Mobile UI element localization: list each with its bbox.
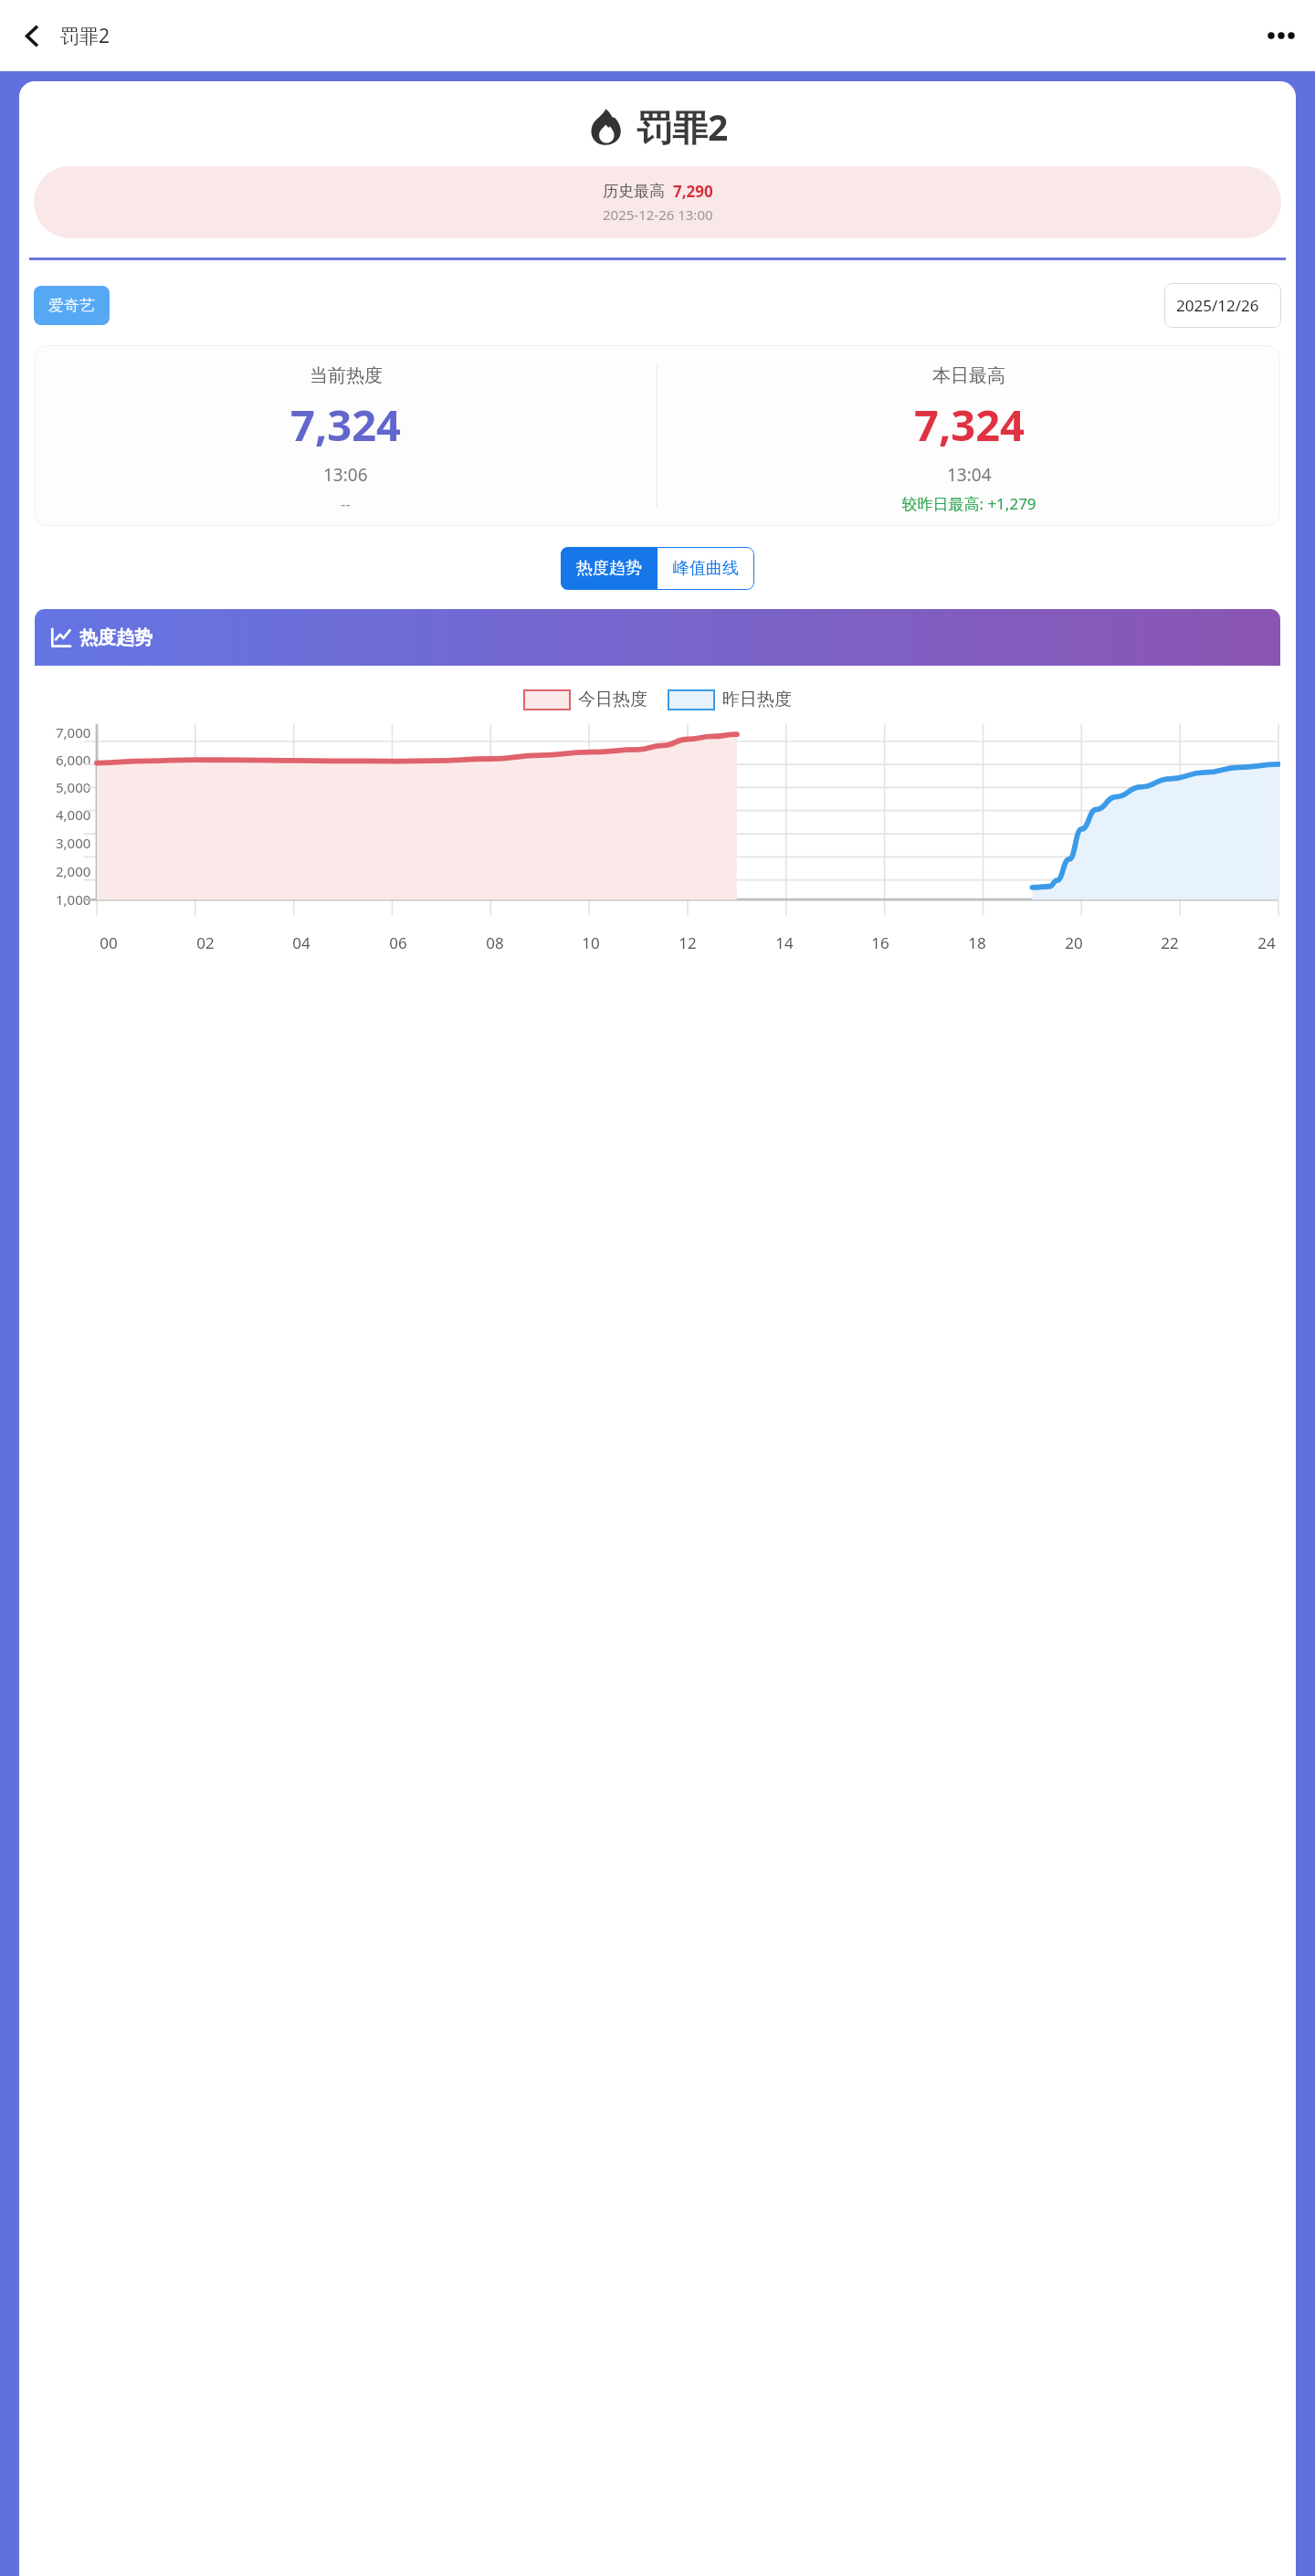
staticText: 罚罪2 (636, 102, 729, 151)
staticText: 10 (582, 932, 600, 953)
staticText: 2025/12/26 (1176, 295, 1259, 316)
staticText: 7,000 (56, 723, 91, 741)
staticText: 24 (1257, 932, 1276, 953)
button[interactable]: 当前热度 (35, 345, 657, 526)
staticText: 峰值曲线 (673, 558, 739, 579)
staticText: -- (341, 493, 351, 514)
staticText: 当前热度 (310, 364, 383, 387)
staticText: 6,000 (56, 751, 91, 769)
staticText: 5,000 (56, 778, 91, 796)
staticText: 20 (1065, 932, 1083, 953)
staticText: 昨日热度 (722, 689, 792, 710)
button[interactable]: 热度趋势 (561, 547, 657, 590)
staticText: 16 (871, 932, 889, 953)
button[interactable]: 本日最高 (657, 345, 1280, 526)
button[interactable]: More options (1258, 13, 1304, 58)
button[interactable]: 历史最高 (34, 166, 1281, 238)
staticText: 14 (775, 932, 794, 953)
button[interactable]: 峰值曲线 (657, 547, 754, 590)
staticText: 2,000 (56, 862, 91, 880)
staticText: 06 (389, 932, 407, 953)
staticText: 00 (100, 932, 118, 953)
button[interactable]: Back (11, 15, 53, 57)
staticText: 历史最高 (603, 182, 665, 201)
staticText: 12 (679, 932, 697, 953)
staticText: 本日最高 (932, 364, 1005, 387)
staticText: 热度趋势 (576, 558, 642, 579)
staticText: 04 (292, 932, 310, 953)
staticText: 今日热度 (578, 689, 647, 710)
staticText: 13:04 (947, 463, 992, 487)
staticText: 22 (1161, 932, 1179, 953)
staticText: 3,000 (56, 834, 91, 852)
staticText: 4,000 (56, 805, 91, 824)
staticText: 13:06 (323, 463, 368, 487)
staticText: 较昨日最高: +1,279 (901, 493, 1036, 514)
staticText: 02 (196, 932, 215, 953)
staticText: 08 (486, 932, 504, 953)
staticText: 18 (968, 932, 986, 953)
staticText: 7,290 (673, 181, 713, 202)
staticText: 7,324 (290, 395, 401, 454)
staticText: 7,324 (914, 395, 1025, 454)
staticText: 爱奇艺 (48, 296, 95, 315)
staticText: 1,000 (56, 890, 91, 909)
staticText: 罚罪2 (60, 23, 110, 49)
button[interactable]: 爱奇艺 (34, 286, 110, 325)
staticText: 热度趋势 (79, 626, 153, 649)
staticText: 2025-12-26 13:00 (603, 205, 713, 224)
button[interactable]: 2025/12/26 (1164, 283, 1281, 328)
